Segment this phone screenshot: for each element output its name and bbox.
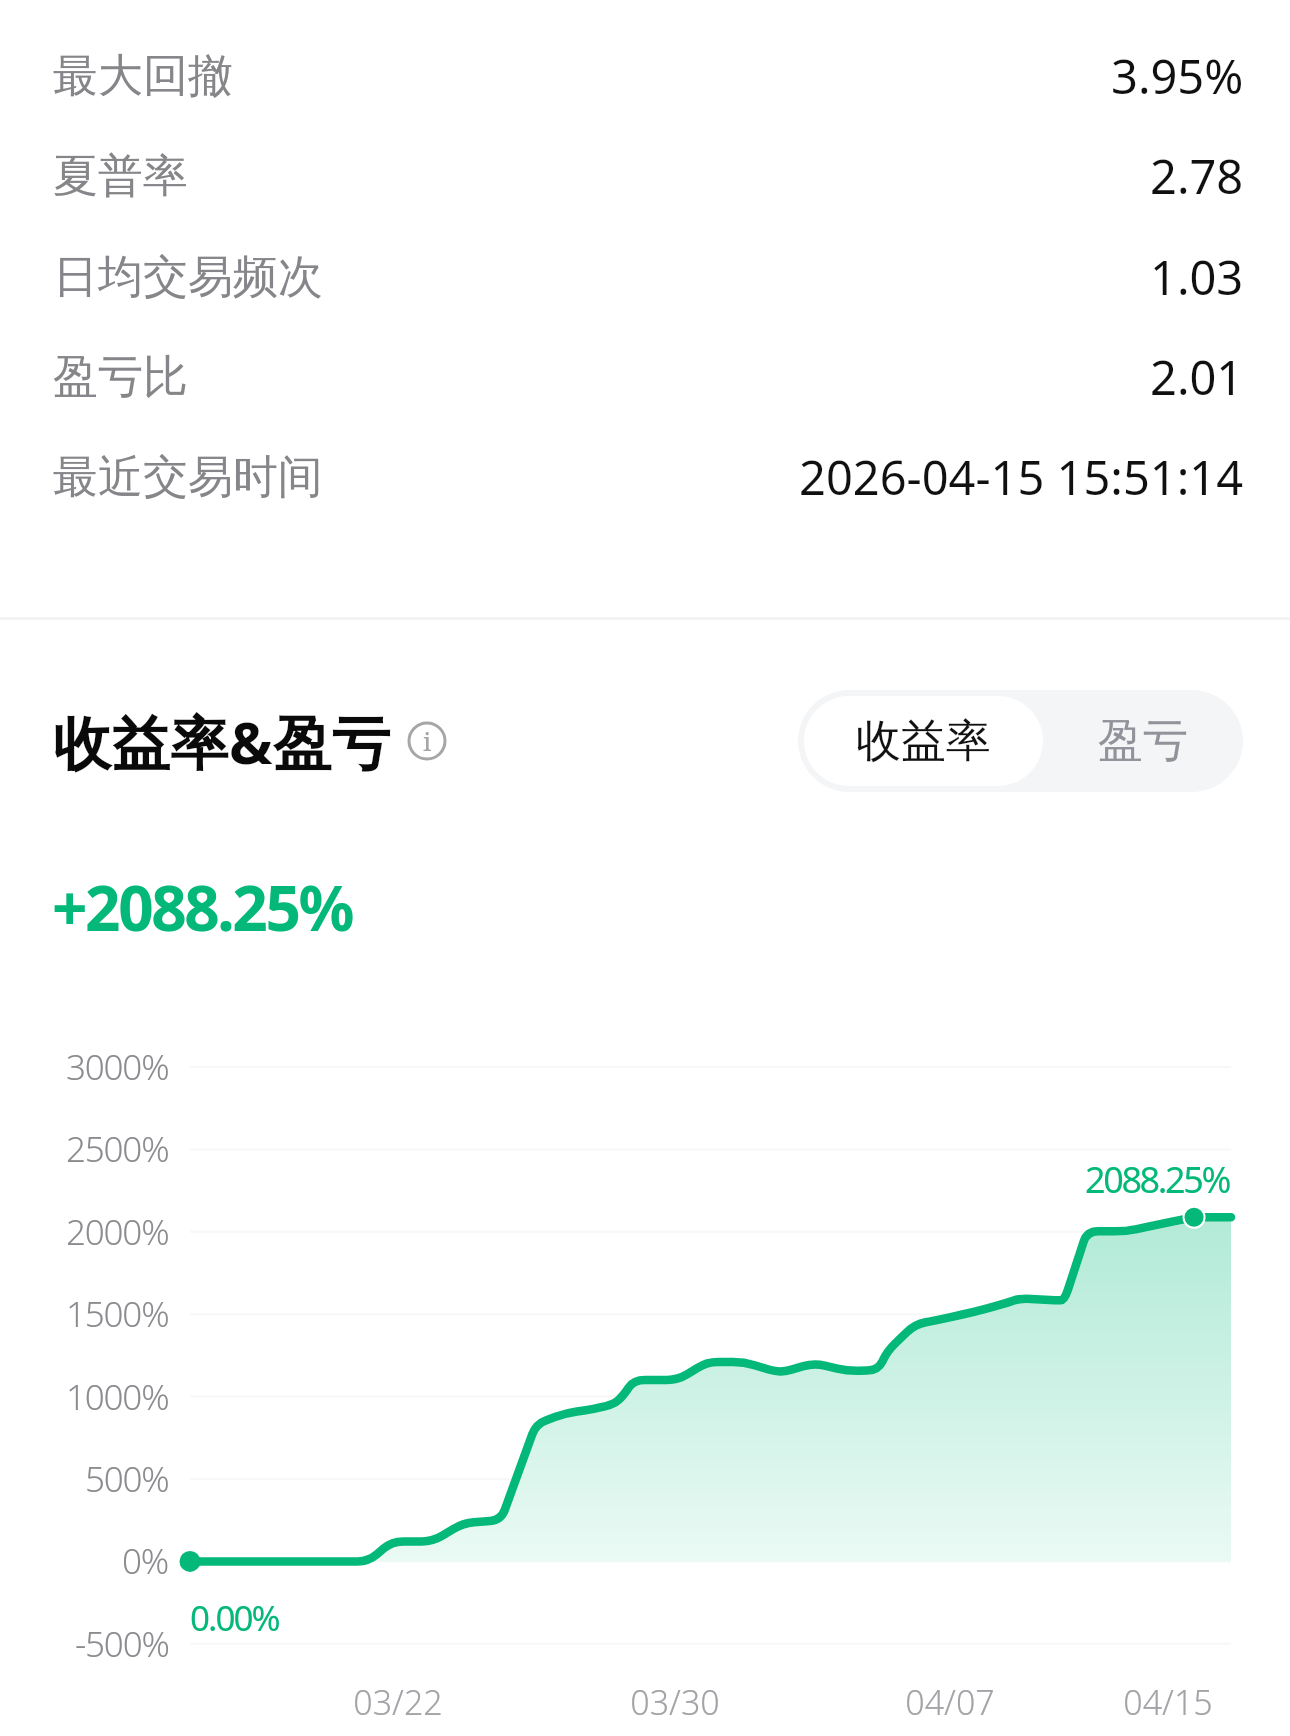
staticText: 最近交易时间 xyxy=(53,449,323,506)
staticText: 04/15 xyxy=(1123,1679,1213,1725)
button[interactable]: 日均交易频次 xyxy=(0,227,1290,327)
button[interactable]: 盈亏 xyxy=(1043,690,1243,792)
staticText: 2500% xyxy=(66,1125,169,1173)
staticText: 2.78 xyxy=(1150,144,1244,208)
staticText: 收益率 xyxy=(856,713,991,770)
staticText: i xyxy=(423,723,432,758)
staticText: 03/22 xyxy=(353,1679,443,1725)
staticText: 04/07 xyxy=(905,1679,995,1725)
staticText: 03/30 xyxy=(630,1679,720,1725)
staticText: 收益率&盈亏 xyxy=(53,702,391,781)
staticText: -500% xyxy=(75,1620,169,1668)
staticText: 2088.25% xyxy=(1085,1155,1229,1204)
button[interactable]: 盈亏比 xyxy=(0,327,1290,427)
staticText: 1000% xyxy=(66,1373,169,1421)
staticText: 日均交易频次 xyxy=(53,249,323,306)
staticText: 0% xyxy=(122,1537,169,1585)
button[interactable]: 最近交易时间 xyxy=(0,427,1290,527)
button[interactable]: 夏普率 xyxy=(0,126,1290,226)
staticText: 1500% xyxy=(66,1290,169,1338)
staticText: 盈亏 xyxy=(1098,713,1188,770)
staticText: 盈亏比 xyxy=(53,349,188,406)
staticText: 2000% xyxy=(66,1208,169,1256)
staticText: 3000% xyxy=(66,1043,169,1091)
staticText: 0.00% xyxy=(190,1594,279,1642)
button[interactable]: More information xyxy=(405,719,449,763)
button[interactable]: 最大回撤 xyxy=(0,26,1290,126)
staticText: +2088.25% xyxy=(52,865,352,949)
button[interactable]: 收益率 xyxy=(804,696,1043,786)
staticText: 夏普率 xyxy=(53,148,188,205)
staticText: 最大回撤 xyxy=(53,48,233,105)
staticText: 1.03 xyxy=(1150,245,1244,309)
staticText: 500% xyxy=(85,1455,169,1503)
staticText: 3.95% xyxy=(1111,44,1244,108)
staticText: 2026-04-15 15:51:14 xyxy=(799,445,1244,509)
staticText: 2.01 xyxy=(1150,345,1244,409)
